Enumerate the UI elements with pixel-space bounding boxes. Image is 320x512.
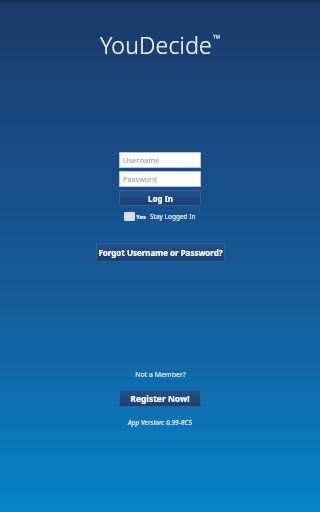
staticText: Not a Member? — [135, 370, 186, 380]
button[interactable]: Forgot Username or Password? — [96, 243, 225, 262]
staticText: Forgot Username or Password? — [98, 247, 223, 258]
button[interactable]: Register Now! — [119, 390, 201, 407]
staticText: App Version: 0.99-RC5 — [128, 418, 192, 427]
button[interactable]: Log In — [119, 190, 201, 206]
staticText: ™ — [213, 31, 221, 45]
button[interactable]: Username — [119, 152, 201, 168]
staticText: Log In — [148, 193, 173, 204]
button[interactable]: Yes — [122, 211, 198, 222]
staticText: Register Now! — [130, 393, 190, 405]
staticText: Yes — [136, 213, 147, 221]
staticText: Stay Logged In — [150, 212, 196, 221]
staticText: Password — [123, 174, 157, 184]
staticText: YouDecide — [100, 29, 213, 60]
staticText: Username — [123, 155, 160, 165]
button[interactable]: Password — [119, 171, 201, 187]
